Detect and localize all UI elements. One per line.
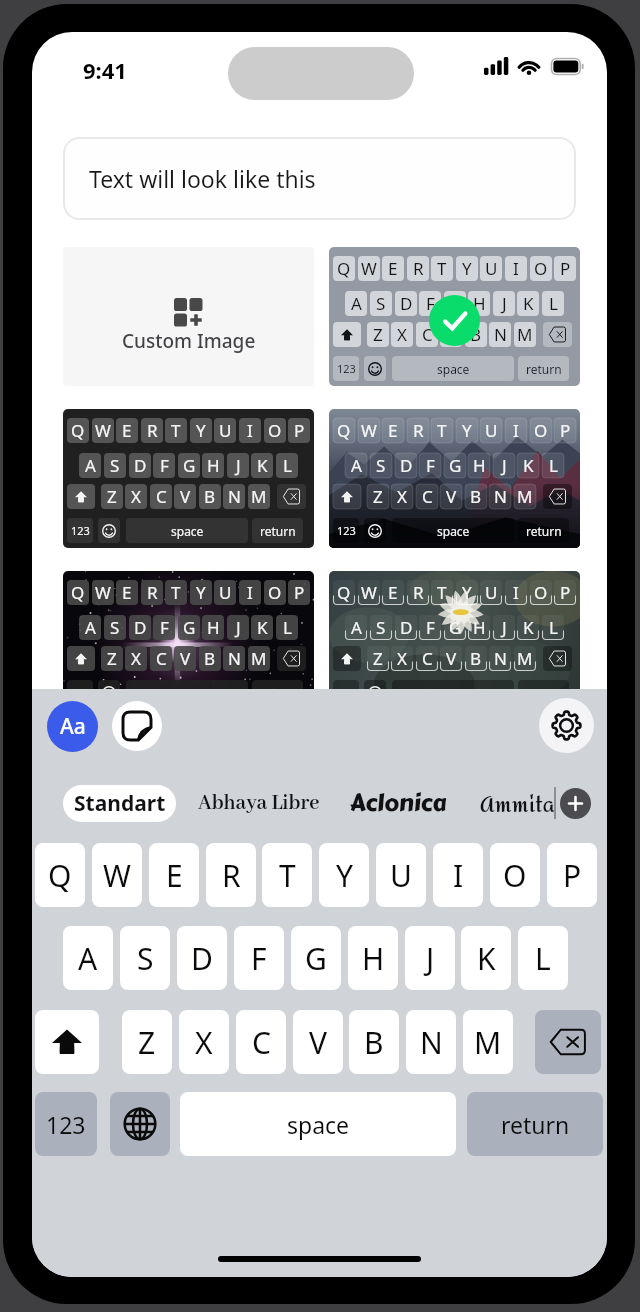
- button[interactable]: Ammita: [476, 785, 559, 822]
- staticText: J: [236, 454, 241, 477]
- button[interactable]: V: [293, 1010, 343, 1074]
- staticText: W: [95, 581, 111, 604]
- button[interactable]: Q: [35, 843, 85, 907]
- staticText: E: [122, 419, 132, 442]
- button[interactable]: S: [120, 926, 170, 990]
- button[interactable]: Change language: [110, 1092, 170, 1156]
- button[interactable]: return: [467, 1092, 603, 1156]
- button[interactable]: G: [291, 926, 341, 990]
- button[interactable]: 123: [35, 1092, 97, 1156]
- button[interactable]: Q: [63, 409, 314, 548]
- staticText: S: [376, 454, 386, 477]
- staticText: D: [134, 454, 147, 477]
- staticText: S: [376, 292, 386, 315]
- staticText: space: [437, 523, 470, 539]
- staticText: X: [195, 1022, 213, 1063]
- button[interactable]: Q: [329, 247, 580, 386]
- button[interactable]: Custom Image: [63, 247, 314, 386]
- staticText: B: [470, 647, 482, 670]
- button[interactable]: R: [206, 843, 256, 907]
- staticText: X: [131, 485, 141, 508]
- staticText: M: [251, 647, 267, 670]
- staticText: U: [390, 855, 412, 896]
- staticText: return: [526, 361, 562, 377]
- button[interactable]: K: [461, 926, 511, 990]
- staticText: L: [549, 454, 558, 477]
- button[interactable]: Q: [329, 409, 580, 548]
- button[interactable]: H: [348, 926, 398, 990]
- staticText: A: [85, 454, 96, 477]
- staticText: return: [526, 523, 562, 539]
- button[interactable]: C: [236, 1010, 286, 1074]
- staticText: Z: [107, 647, 117, 670]
- button[interactable]: E: [149, 843, 199, 907]
- button[interactable]: Shift: [35, 1010, 99, 1074]
- staticText: Q: [71, 581, 85, 604]
- button[interactable]: Add font: [560, 788, 591, 819]
- button[interactable]: T: [262, 843, 312, 907]
- button[interactable]: space: [180, 1092, 456, 1156]
- button[interactable]: Aclonica: [346, 785, 451, 822]
- staticText: E: [122, 581, 132, 604]
- staticText: V: [446, 485, 457, 508]
- staticText: S: [137, 938, 154, 979]
- staticText: W: [361, 419, 377, 442]
- button[interactable]: P: [547, 843, 597, 907]
- staticText: C: [422, 323, 433, 346]
- button[interactable]: Y: [319, 843, 369, 907]
- button[interactable]: J: [405, 926, 455, 990]
- button[interactable]: Q: [63, 571, 314, 710]
- staticText: F: [426, 616, 435, 639]
- button[interactable]: Aa: [47, 701, 98, 752]
- staticText: H: [207, 616, 220, 639]
- button[interactable]: O: [490, 843, 540, 907]
- staticText: T: [279, 855, 296, 896]
- button[interactable]: L: [518, 926, 568, 990]
- staticText: U: [485, 257, 498, 280]
- button[interactable]: Z: [122, 1010, 172, 1074]
- staticText: F: [160, 454, 169, 477]
- staticText: J: [236, 616, 241, 639]
- staticText: 123: [337, 361, 356, 376]
- button[interactable]: X: [179, 1010, 229, 1074]
- staticText: M: [517, 485, 533, 508]
- staticText: R: [413, 419, 424, 442]
- button[interactable]: M: [463, 1010, 513, 1074]
- staticText: Y: [196, 581, 206, 604]
- button[interactable]: Q: [329, 571, 580, 710]
- staticText: X: [397, 647, 407, 670]
- button[interactable]: I: [433, 843, 483, 907]
- staticText: H: [473, 616, 486, 639]
- staticText: W: [103, 855, 131, 896]
- button[interactable]: Abhaya Libre: [194, 785, 324, 822]
- staticText: B: [364, 1022, 384, 1063]
- staticText: L: [549, 292, 558, 315]
- staticText: V: [446, 323, 457, 346]
- staticText: W: [361, 581, 377, 604]
- staticText: A: [351, 454, 362, 477]
- button[interactable]: D: [177, 926, 227, 990]
- button[interactable]: U: [376, 843, 426, 907]
- button[interactable]: A: [63, 926, 113, 990]
- staticText: K: [523, 616, 534, 639]
- button[interactable]: Standart: [63, 785, 176, 822]
- button[interactable]: W: [92, 843, 142, 907]
- staticText: space: [171, 523, 204, 539]
- button[interactable]: B: [349, 1010, 399, 1074]
- staticText: C: [422, 647, 433, 670]
- staticText: P: [294, 419, 305, 442]
- staticText: Y: [336, 855, 353, 896]
- button[interactable]: F: [234, 926, 284, 990]
- button[interactable]: Backspace: [535, 1010, 601, 1074]
- staticText: H: [207, 454, 220, 477]
- staticText: Z: [373, 647, 383, 670]
- button[interactable]: N: [406, 1010, 456, 1074]
- staticText: Y: [196, 419, 206, 442]
- staticText: return: [501, 1109, 570, 1140]
- button[interactable]: Stickers: [112, 701, 162, 751]
- staticText: O: [268, 581, 282, 604]
- staticText: M: [517, 323, 533, 346]
- staticText: D: [191, 938, 213, 979]
- button[interactable]: Settings: [539, 698, 594, 753]
- button[interactable]: Text will look like this: [63, 137, 576, 220]
